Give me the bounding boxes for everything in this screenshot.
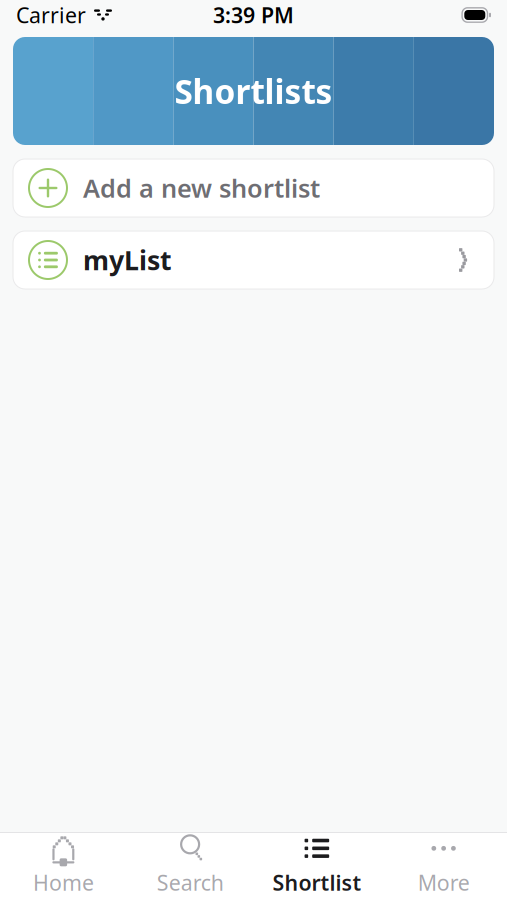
button[interactable]: More (380, 832, 507, 900)
button[interactable]: myList (0, 217, 507, 289)
staticText: Search (157, 868, 224, 897)
staticText: Shortlists (174, 69, 332, 113)
button[interactable]: Home (0, 832, 127, 900)
staticText: 3:39 PM (213, 1, 294, 29)
staticText: Carrier (16, 1, 86, 29)
button[interactable]: Add a new shortlist (0, 145, 507, 217)
staticText: More (418, 868, 470, 897)
button[interactable]: Search (127, 832, 254, 900)
staticText: Home (33, 868, 94, 897)
button[interactable]: Shortlist (253, 832, 380, 900)
staticText: myList (83, 242, 172, 278)
staticText: Add a new shortlist (83, 171, 320, 205)
staticText: Shortlist (272, 868, 361, 897)
